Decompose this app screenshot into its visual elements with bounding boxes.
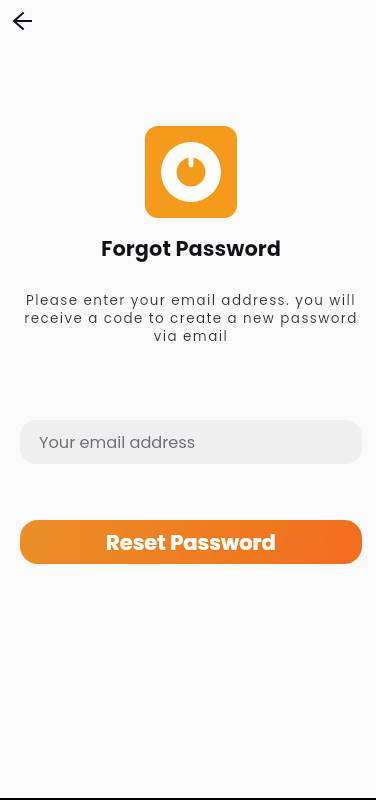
button[interactable]: Back: [2, 1, 42, 41]
staticText: Forgot Password: [3, 234, 376, 263]
staticText: Reset Password: [106, 528, 276, 557]
staticText: Your email address: [39, 431, 196, 454]
staticText: Please enter your email address. you wil…: [15, 291, 367, 346]
button[interactable]: Reset Password: [20, 520, 362, 564]
button[interactable]: Your email address: [20, 420, 362, 464]
